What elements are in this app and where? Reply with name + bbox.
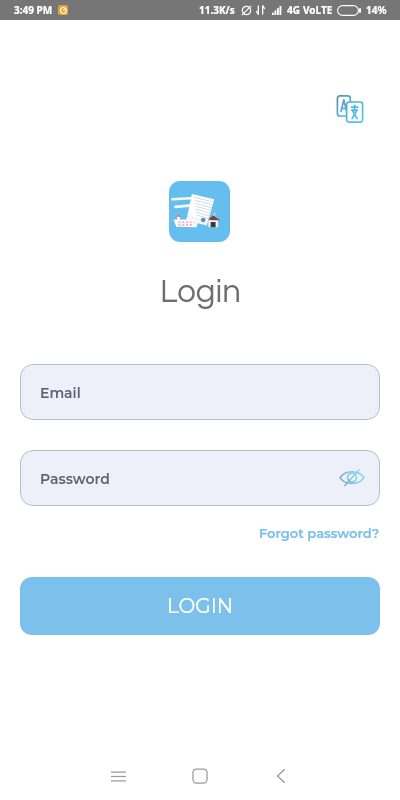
staticText: Email: [40, 384, 81, 401]
button[interactable]: Change language: [330, 89, 370, 129]
staticText: VoLTE: [303, 3, 333, 17]
staticText: 14%: [366, 3, 387, 17]
staticText: 11.3K/s: [199, 3, 235, 17]
button[interactable]: Recent apps: [94, 752, 142, 800]
button[interactable]: LOGIN: [20, 577, 380, 635]
staticText: Login: [160, 275, 241, 309]
staticText: LOGIN: [167, 594, 234, 618]
staticText: 3:49 PM: [14, 3, 53, 17]
button[interactable]: Forgot password?: [253, 519, 386, 547]
button[interactable]: Password: [20, 450, 380, 506]
staticText: 4G: [287, 3, 300, 17]
button[interactable]: Email: [20, 364, 380, 420]
button[interactable]: Show password: [336, 462, 368, 494]
staticText: Password: [40, 470, 110, 487]
staticText: Forgot password?: [259, 525, 380, 541]
button[interactable]: Home: [176, 752, 224, 800]
button[interactable]: Back: [257, 752, 305, 800]
